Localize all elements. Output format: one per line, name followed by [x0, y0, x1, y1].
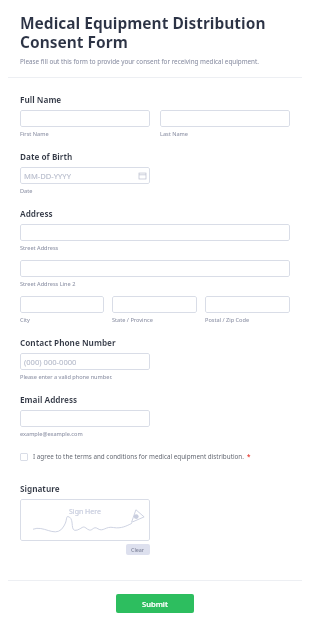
button[interactable] [20, 296, 104, 313]
staticText: Address [20, 208, 53, 219]
staticText: Date of Birth [20, 151, 73, 162]
staticText: Contact Phone Number [20, 337, 116, 348]
staticText: Street Address Line 2 [20, 280, 76, 288]
staticText: Email Address [20, 394, 78, 405]
button[interactable] [20, 110, 150, 127]
staticText: Last Name [160, 130, 188, 138]
staticText: Submit [142, 599, 168, 609]
button[interactable]: Clear [126, 544, 150, 555]
staticText: I agree to the terms and conditions for … [33, 452, 244, 461]
staticText: Signature [20, 483, 60, 494]
button[interactable] [160, 110, 290, 127]
button[interactable] [20, 410, 150, 427]
staticText: Street Address [20, 244, 59, 252]
staticText: First Name [20, 130, 49, 138]
staticText: Clear [131, 546, 145, 553]
button[interactable] [205, 296, 290, 313]
button[interactable] [112, 296, 197, 313]
button[interactable] [20, 260, 290, 277]
button[interactable] [20, 224, 290, 241]
staticText: Postal / Zip Code [205, 316, 250, 324]
button[interactable]: MM-DD-YYYY [20, 167, 150, 184]
staticText: * [247, 452, 251, 461]
staticText: Sign Here [69, 507, 101, 517]
staticText: Please fill out this form to provide you… [20, 57, 290, 66]
staticText: Full Name [20, 94, 62, 105]
staticText: Date [20, 187, 33, 195]
staticText: Please enter a valid phone number. [20, 373, 113, 381]
button[interactable]: (000) 000-0000 [20, 353, 150, 370]
staticText: MM-DD-YYYY [24, 171, 139, 181]
staticText: State / Province [112, 316, 153, 324]
button[interactable]: Signature pad, sign here [20, 499, 150, 541]
button[interactable]: I agree to the terms and conditions for … [20, 452, 290, 461]
staticText: City [20, 316, 30, 324]
button[interactable]: Submit [116, 594, 194, 613]
staticText: (000) 000-0000 [24, 357, 146, 367]
staticText: example@example.com [20, 430, 83, 438]
staticText: Medical Equipment Distribution Consent F… [20, 12, 290, 52]
